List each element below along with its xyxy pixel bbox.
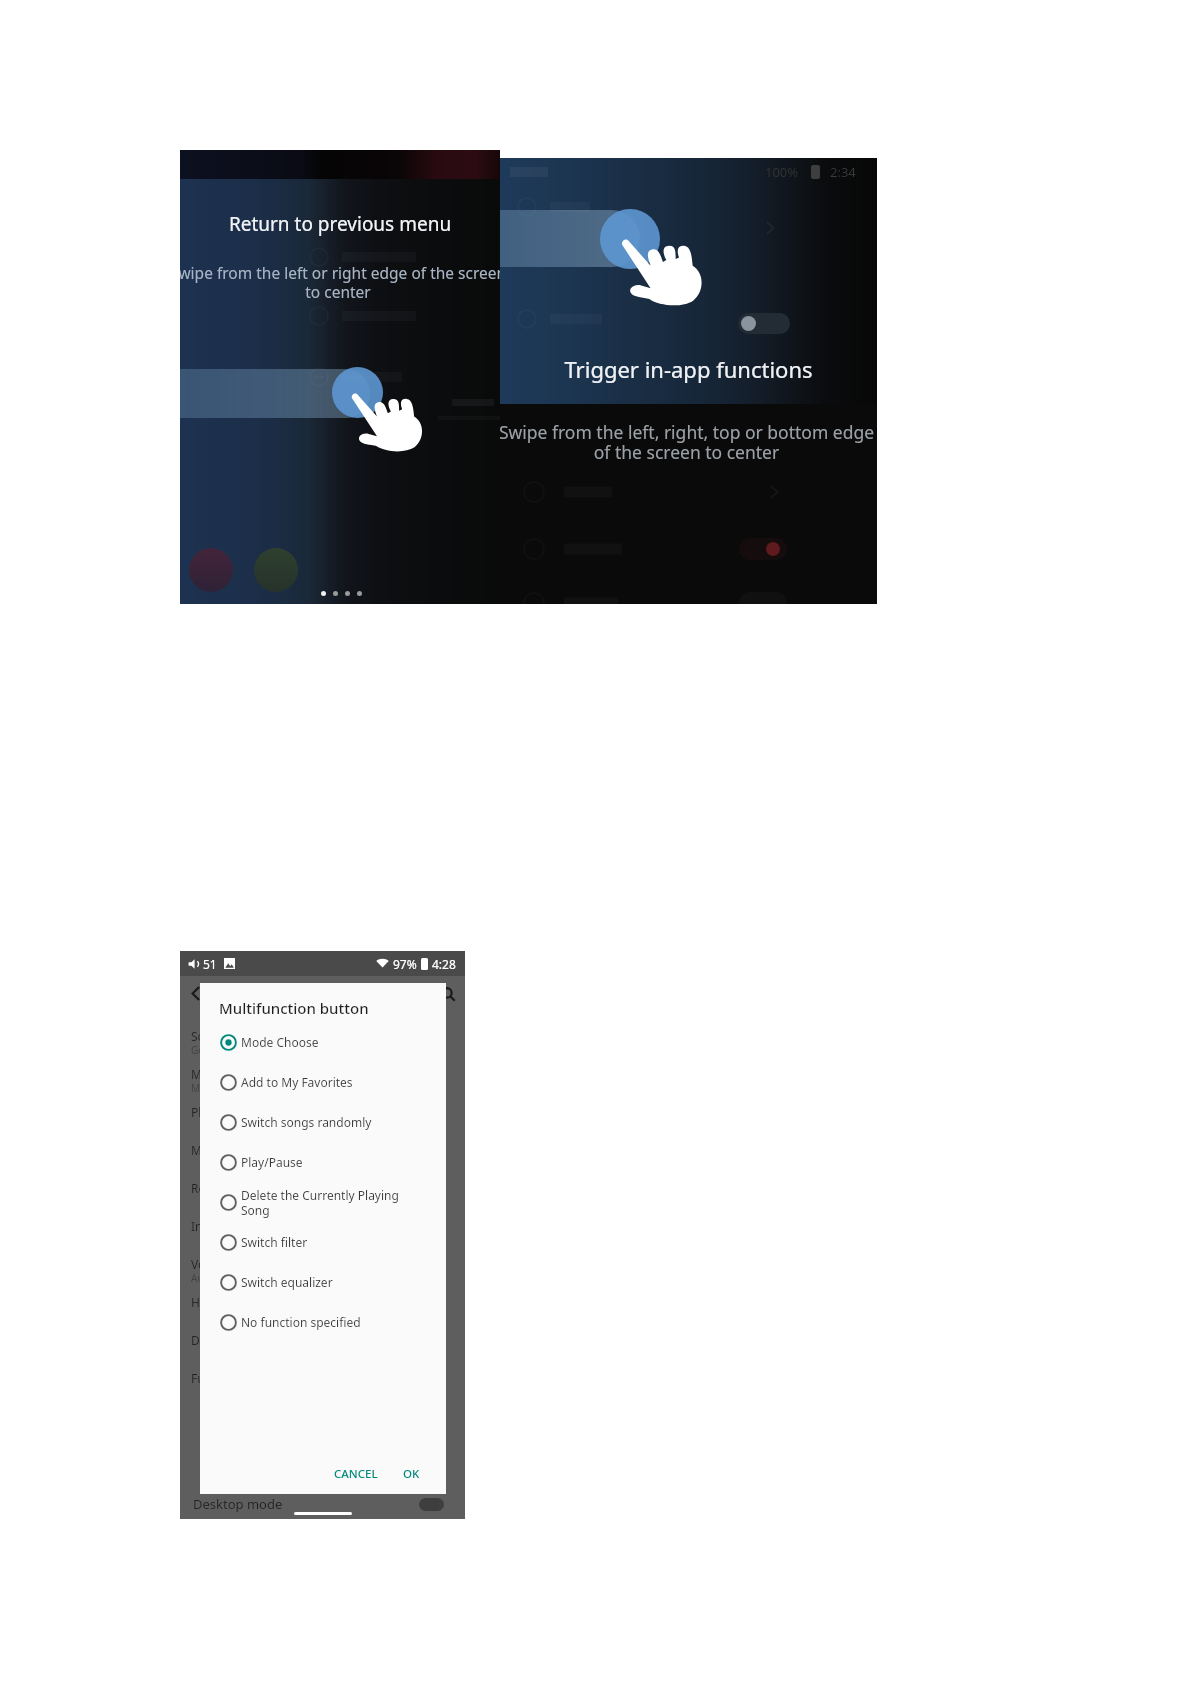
staticText: Switch equalizer: [241, 1274, 406, 1290]
button[interactable]: Switch filter: [200, 1222, 446, 1262]
button[interactable]: Mode Choose: [200, 1022, 446, 1062]
staticText: Media: [191, 1066, 226, 1082]
staticText: Display: [191, 1332, 232, 1348]
staticText: Return to previous menu: [180, 211, 500, 237]
staticText: 51: [203, 956, 217, 972]
staticText: Volume: [191, 1256, 234, 1272]
staticText: Play/Pause: [241, 1154, 406, 1170]
staticText: 100%: [765, 163, 799, 181]
staticText: No function specified: [241, 1314, 406, 1330]
staticText: Desktop mode: [193, 1495, 283, 1513]
button[interactable]: Switch equalizer: [200, 1262, 446, 1302]
staticText: Swipe from the left, right, top or botto…: [500, 420, 877, 464]
button[interactable]: Switch songs randomly: [200, 1102, 446, 1142]
staticText: Switch filter: [241, 1234, 406, 1250]
staticText: Trigger in-app functions: [500, 354, 877, 384]
staticText: Switch songs randomly: [241, 1114, 406, 1130]
staticText: Func: [191, 1370, 218, 1386]
staticText: Gen: [191, 1043, 211, 1057]
staticText: Swipe from the left or right edge of the…: [180, 262, 500, 302]
button[interactable]: Back: [183, 980, 210, 1007]
staticText: CANCEL: [334, 1466, 378, 1482]
staticText: Headset: [191, 1294, 238, 1310]
button[interactable]: CANCEL: [326, 1459, 386, 1489]
button[interactable]: Delete the Currently Playing Song: [200, 1182, 446, 1222]
staticText: Au: [191, 1271, 204, 1285]
staticText: Sound: [191, 1028, 228, 1044]
button[interactable]: Play/Pause: [200, 1142, 446, 1182]
button[interactable]: No function specified: [200, 1302, 446, 1342]
button[interactable]: Search: [434, 980, 461, 1007]
button[interactable]: OK: [395, 1459, 428, 1489]
staticText: Repeat: [191, 1180, 231, 1196]
staticText: 97%: [393, 956, 417, 972]
staticText: 2:34: [830, 163, 856, 181]
staticText: Play: [191, 1104, 215, 1120]
button[interactable]: Add to My Favorites: [200, 1062, 446, 1102]
staticText: 4:28: [432, 956, 456, 972]
staticText: Add to My Favorites: [241, 1074, 406, 1090]
staticText: Delete the Currently Playing Song: [241, 1187, 406, 1218]
staticText: Music: [191, 1142, 224, 1158]
staticText: Int: [191, 1218, 207, 1234]
staticText: OK: [403, 1466, 420, 1482]
staticText: Mu: [191, 1081, 207, 1095]
staticText: Multifunction button: [219, 998, 369, 1018]
button[interactable]: Desktop mode: [180, 1489, 465, 1519]
staticText: Mode Choose: [241, 1034, 406, 1050]
